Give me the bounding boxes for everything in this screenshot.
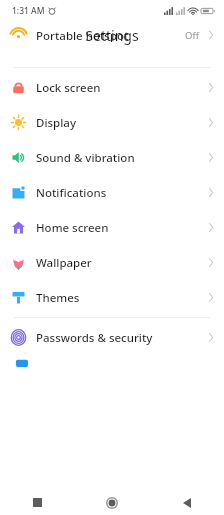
button[interactable]: Home screen [0,210,224,245]
staticText: Themes [36,290,80,306]
staticText: Home screen [36,220,109,236]
staticText: Portable hotspot [36,28,129,42]
button[interactable]: Display [0,105,224,140]
button[interactable]: Lock screen [0,70,224,105]
button[interactable]: Wallpaper [0,245,224,280]
staticText: Settings [85,26,139,45]
staticText: Wallpaper [36,255,92,271]
staticText: 1:31 AM [12,5,45,17]
staticText: Display [36,115,76,131]
button[interactable] [0,355,224,364]
button[interactable]: Themes [0,280,224,315]
button[interactable]: Passwords & security [0,320,224,355]
staticText: Lock screen [36,80,101,96]
staticText: Passwords & security [36,330,153,346]
staticText: Notifications [36,185,107,201]
button[interactable]: Home [74,490,149,515]
button[interactable]: Sound & vibration [0,140,224,175]
button[interactable]: Notifications [0,175,224,210]
button[interactable]: Recent apps [0,490,74,515]
button[interactable]: Back [149,490,224,515]
staticText: Sound & vibration [36,150,135,166]
staticText: Off [185,29,199,42]
